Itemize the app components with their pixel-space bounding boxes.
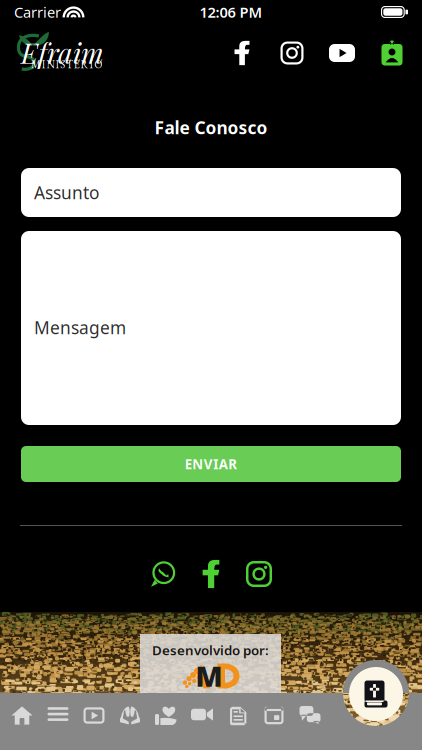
button[interactable]: Facebook <box>192 556 230 592</box>
staticText: 12:06 PM <box>199 2 262 22</box>
button[interactable]: ENVIAR <box>21 446 401 482</box>
button[interactable]: Instagram <box>275 33 309 73</box>
staticText: Carrier <box>14 2 61 22</box>
button[interactable]: Doar <box>148 693 184 750</box>
staticText: Desenvolvido por: <box>152 641 269 659</box>
button[interactable]: Instagram <box>240 556 278 592</box>
staticText: Fale Conosco <box>154 116 267 139</box>
button[interactable]: Início <box>4 693 40 750</box>
button[interactable]: Mensagem <box>21 231 401 425</box>
staticText: MINISTÉRIO <box>31 57 102 71</box>
button[interactable]: Bíblia <box>349 667 403 721</box>
button[interactable]: Facebook <box>225 33 259 73</box>
button[interactable]: YouTube <box>325 33 359 73</box>
button[interactable]: Documentos <box>220 693 256 750</box>
staticText: M <box>195 657 222 694</box>
button[interactable]: Vídeos <box>76 693 112 750</box>
staticText: Assunto <box>34 181 99 204</box>
button[interactable]: Contato <box>375 33 409 73</box>
button[interactable]: Agenda <box>256 693 292 750</box>
staticText: ENVIAR <box>185 455 237 473</box>
staticText: Efraim <box>21 33 104 71</box>
button[interactable]: WhatsApp <box>144 556 182 592</box>
button[interactable]: Ao vivo <box>184 693 220 750</box>
button[interactable]: Oração <box>112 693 148 750</box>
button[interactable]: Assunto <box>21 168 401 217</box>
button[interactable]: Lista <box>40 693 76 750</box>
staticText: Mensagem <box>34 316 126 339</box>
button[interactable]: Mensagens <box>292 693 328 750</box>
